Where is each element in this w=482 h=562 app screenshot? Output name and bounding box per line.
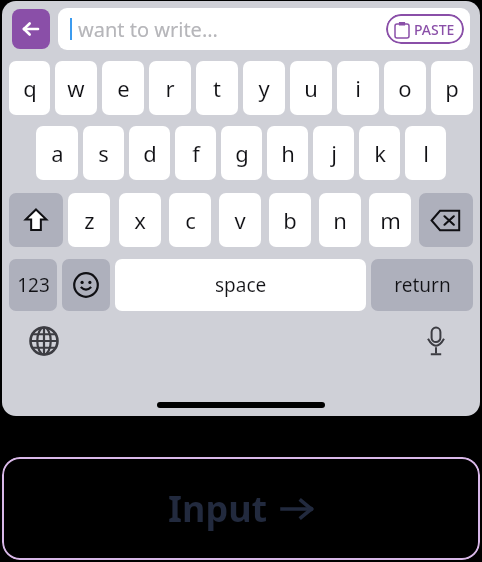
staticText: l: [423, 138, 429, 168]
staticText: g: [235, 138, 249, 168]
button[interactable]: want to write...: [58, 8, 470, 50]
staticText: o: [398, 73, 412, 103]
staticText: z: [84, 205, 95, 235]
staticText: u: [304, 73, 318, 103]
button[interactable]: x: [119, 193, 161, 247]
staticText: Input: [168, 484, 268, 533]
staticText: t: [213, 73, 221, 103]
button[interactable]: Input: [2, 457, 480, 560]
button[interactable]: h: [267, 126, 308, 180]
staticText: b: [283, 205, 297, 235]
button[interactable]: return: [371, 259, 473, 311]
staticText: e: [117, 73, 130, 103]
button[interactable]: v: [219, 193, 261, 247]
button[interactable]: n: [319, 193, 361, 247]
button[interactable]: i: [337, 61, 379, 115]
button[interactable]: o: [384, 61, 426, 115]
staticText: d: [143, 138, 157, 168]
button[interactable]: f: [175, 126, 216, 180]
staticText: r: [165, 73, 175, 103]
staticText: 123: [17, 272, 50, 298]
button[interactable]: u: [290, 61, 332, 115]
staticText: p: [445, 73, 459, 103]
button[interactable]: e: [102, 61, 144, 115]
button[interactable]: 123: [9, 259, 57, 311]
button[interactable]: b: [269, 193, 311, 247]
staticText: f: [192, 138, 200, 168]
button[interactable]: a: [36, 126, 78, 180]
button[interactable]: space: [115, 259, 366, 311]
staticText: y: [258, 73, 270, 103]
button[interactable]: Change keyboard language: [24, 321, 64, 361]
button[interactable]: t: [196, 61, 238, 115]
button[interactable]: s: [83, 126, 124, 180]
button[interactable]: Back: [12, 9, 50, 49]
staticText: want to write...: [78, 16, 218, 43]
button[interactable]: g: [221, 126, 262, 180]
button[interactable]: y: [243, 61, 285, 115]
button[interactable]: d: [129, 126, 170, 180]
button[interactable]: w: [55, 61, 97, 115]
button[interactable]: k: [359, 126, 400, 180]
staticText: m: [380, 205, 401, 235]
staticText: i: [355, 73, 361, 103]
staticText: n: [333, 205, 347, 235]
button[interactable]: Emoji: [62, 259, 110, 311]
button[interactable]: PASTE: [386, 14, 464, 44]
staticText: j: [331, 138, 337, 168]
staticText: a: [51, 138, 64, 168]
staticText: c: [185, 205, 196, 235]
button[interactable]: z: [68, 193, 110, 247]
button[interactable]: p: [431, 61, 473, 115]
staticText: return: [394, 272, 451, 298]
button[interactable]: Backspace: [419, 193, 473, 247]
button[interactable]: r: [149, 61, 191, 115]
staticText: w: [67, 73, 85, 103]
staticText: PASTE: [414, 20, 455, 39]
button[interactable]: Shift: [9, 193, 63, 247]
staticText: s: [98, 138, 109, 168]
staticText: v: [234, 205, 246, 235]
staticText: q: [23, 73, 37, 103]
staticText: space: [215, 272, 267, 298]
button[interactable]: l: [405, 126, 446, 180]
button[interactable]: m: [369, 193, 411, 247]
button[interactable]: Voice input: [416, 321, 456, 361]
button[interactable]: q: [9, 61, 50, 115]
staticText: k: [374, 138, 386, 168]
button[interactable]: j: [313, 126, 354, 180]
staticText: h: [281, 138, 295, 168]
button[interactable]: c: [169, 193, 211, 247]
staticText: x: [134, 205, 146, 235]
